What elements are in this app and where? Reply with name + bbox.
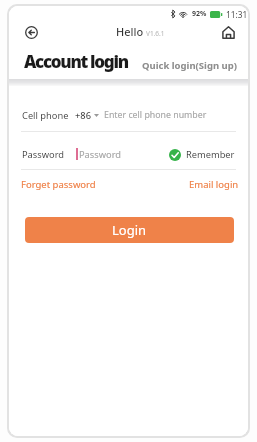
staticText: 11:31	[226, 9, 248, 20]
button[interactable]: Quick login(Sign up)	[142, 59, 237, 72]
button[interactable]: Email login	[189, 178, 239, 191]
staticText: Password	[79, 148, 122, 161]
button[interactable]: Home	[218, 22, 238, 42]
staticText: Remember	[186, 148, 235, 161]
button[interactable]: Back	[21, 22, 41, 42]
button[interactable]: Forget password	[21, 178, 96, 191]
staticText: +86	[75, 109, 91, 122]
button[interactable]: Remember	[169, 148, 235, 161]
staticText: 92%	[192, 9, 207, 19]
button[interactable]: +86	[75, 109, 99, 122]
button[interactable]: Login	[25, 217, 234, 243]
staticText: Enter cell phone number	[104, 109, 207, 121]
staticText: Login	[112, 221, 147, 239]
staticText: Password	[22, 148, 65, 161]
staticText: V1.6.1	[146, 29, 165, 38]
staticText: Cell phone	[22, 109, 69, 122]
staticText: Hello	[116, 24, 144, 39]
staticText: Account login	[24, 50, 128, 73]
